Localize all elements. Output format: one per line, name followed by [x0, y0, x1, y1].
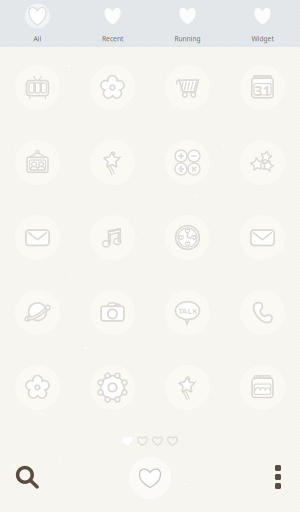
button[interactable]: App: [225, 125, 300, 200]
button[interactable]: App: [75, 275, 150, 350]
staticText: 31: [255, 82, 269, 98]
button[interactable]: App: [75, 200, 150, 275]
button[interactable]: Menu: [248, 459, 300, 503]
button[interactable]: App: [150, 125, 225, 200]
staticText: All: [33, 34, 41, 43]
button[interactable]: App: [0, 50, 75, 125]
button[interactable]: Widget: [225, 0, 300, 47]
staticText: TALK: [179, 306, 195, 315]
button[interactable]: App: [225, 275, 300, 350]
staticText: Widget: [251, 34, 273, 43]
button[interactable]: App: [0, 275, 75, 350]
button[interactable]: App: [150, 200, 225, 275]
button[interactable]: App: [75, 50, 150, 125]
button[interactable]: App: [0, 200, 75, 275]
button[interactable]: App: [225, 200, 300, 275]
button[interactable]: App: [150, 275, 225, 350]
staticText: Recent: [102, 34, 123, 43]
button[interactable]: App: [0, 125, 75, 200]
button[interactable]: App: [225, 350, 300, 425]
button[interactable]: Search: [0, 459, 52, 503]
button[interactable]: Home: [124, 459, 176, 503]
button[interactable]: Running: [150, 0, 225, 47]
button[interactable]: App: [150, 350, 225, 425]
button[interactable]: App: [225, 50, 300, 125]
button[interactable]: App: [75, 125, 150, 200]
staticText: Running: [174, 34, 200, 43]
button[interactable]: Recent: [75, 0, 150, 47]
button[interactable]: App: [75, 350, 150, 425]
button[interactable]: App: [0, 350, 75, 425]
button[interactable]: App: [150, 50, 225, 125]
button[interactable]: All: [0, 0, 75, 47]
